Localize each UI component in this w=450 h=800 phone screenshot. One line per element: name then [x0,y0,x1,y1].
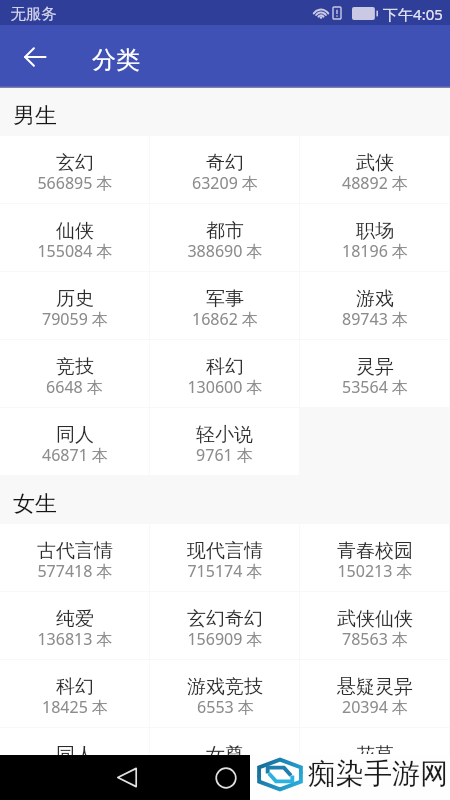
button[interactable]: 都市 [150,204,299,271]
button[interactable]: 现代言情 [150,524,299,591]
staticText: 轻小说 [196,423,253,447]
staticText: 9761 本 [196,444,253,466]
staticText: 89743 本 [342,308,408,330]
staticText: 历史 [56,287,94,311]
button[interactable]: 玄幻奇幻 [150,592,299,659]
staticText: 古代言情 [37,539,113,563]
button[interactable]: 奇幻 [150,136,299,203]
button[interactable]: 花草 [300,728,449,795]
button[interactable]: 科幻 [0,660,149,727]
staticText: 6648 本 [46,376,103,398]
button[interactable]: 武侠 [300,136,449,203]
staticText: 玄幻奇幻 [187,607,263,631]
staticText: 130600 本 [187,376,263,398]
staticText: 仙侠 [56,219,94,243]
button[interactable]: 武侠仙侠 [300,592,449,659]
staticText: 715174 本 [187,560,263,582]
button[interactable]: 同人 [0,728,149,795]
staticText: 53564 本 [342,376,408,398]
staticText: 纯爱 [56,607,94,631]
button[interactable]: 科幻 [150,340,299,407]
button[interactable]: 职场 [300,204,449,271]
staticText: 63209 本 [192,172,258,194]
staticText: 男生 [13,102,57,130]
staticText: 奇幻 [206,151,244,175]
staticText: 军事 [206,287,244,311]
staticText: 6553 本 [197,696,254,718]
staticText: 武侠 [356,151,394,175]
staticText: 科幻 [206,355,244,379]
staticText: 下午4:05 [383,4,443,24]
staticText: 科幻 [56,675,94,699]
staticText: 青春校园 [337,539,413,563]
button[interactable]: 灵异 [300,340,449,407]
staticText: 156909 本 [187,628,263,650]
staticText: 灵异 [356,355,394,379]
button[interactable]: 历史 [0,272,149,339]
staticText: 现代言情 [187,539,263,563]
staticText: 388690 本 [187,240,263,262]
staticText: 79059 本 [42,308,108,330]
button[interactable]: 游戏 [300,272,449,339]
staticText: 48892 本 [342,172,408,194]
staticText: 18425 本 [42,696,108,718]
button[interactable]: 轻小说 [150,408,299,475]
staticText: 无服务 [10,4,57,24]
staticText: 3456 本 [346,764,403,786]
staticText: 150213 本 [337,560,413,582]
staticText: 20394 本 [342,696,408,718]
button[interactable]: 竞技 [0,340,149,407]
staticText: 花草 [356,743,394,767]
staticText: 竞技 [56,355,94,379]
button[interactable]: Home [202,755,250,800]
button[interactable]: Back [103,755,151,800]
staticText: 46871 本 [42,444,108,466]
button[interactable]: 玄幻 [0,136,149,203]
staticText: 职场 [356,219,394,243]
staticText: 游戏 [356,287,394,311]
staticText: 女尊 [206,743,244,767]
staticText: 136813 本 [37,628,113,650]
button[interactable]: Back [11,33,58,80]
staticText: 武侠仙侠 [337,607,413,631]
button[interactable]: 女尊 [150,728,299,795]
staticText: 577418 本 [37,560,113,582]
staticText: 分类 [92,45,140,75]
button[interactable]: 同人 [0,408,149,475]
staticText: 78563 本 [342,628,408,650]
staticText: 18196 本 [342,240,408,262]
staticText: 都市 [206,219,244,243]
staticText: 悬疑灵异 [337,675,413,699]
staticText: 566895 本 [37,172,113,194]
staticText: 16862 本 [192,308,258,330]
staticText: 同人 [56,423,94,447]
button[interactable]: 军事 [150,272,299,339]
staticText: 游戏竞技 [187,675,263,699]
button[interactable]: 纯爱 [0,592,149,659]
staticText: 痴染手游网 [308,756,448,791]
staticText: 2345 本 [196,764,253,786]
button[interactable]: 游戏竞技 [150,660,299,727]
staticText: 155084 本 [37,240,113,262]
button[interactable]: 仙侠 [0,204,149,271]
button[interactable]: 青春校园 [300,524,449,591]
staticText: 女生 [13,490,57,518]
button[interactable]: 古代言情 [0,524,149,591]
staticText: 同人 [56,743,94,767]
staticText: 玄幻 [56,151,94,175]
button[interactable]: 悬疑灵异 [300,660,449,727]
